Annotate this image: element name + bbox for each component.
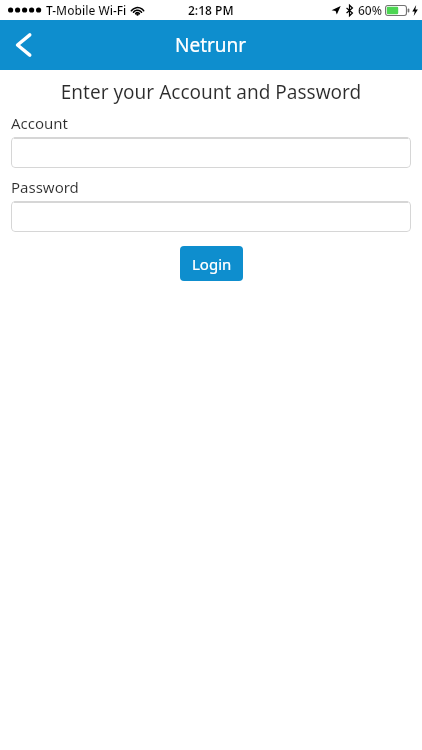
- button[interactable]: Back: [0, 20, 46, 70]
- staticText: Enter your Account and Password: [0, 79, 422, 105]
- staticText: T-Mobile Wi-Fi: [46, 2, 127, 18]
- staticText: Netrunr: [175, 32, 247, 58]
- button[interactable]: Login: [180, 246, 243, 281]
- staticText: Password: [11, 177, 79, 197]
- button[interactable]: Text input: [11, 201, 411, 232]
- staticText: Account: [11, 113, 69, 133]
- staticText: 60%: [358, 2, 382, 18]
- button[interactable]: Text input: [11, 137, 411, 168]
- staticText: 2:18 PM: [188, 2, 234, 18]
- staticText: Login: [192, 254, 232, 274]
